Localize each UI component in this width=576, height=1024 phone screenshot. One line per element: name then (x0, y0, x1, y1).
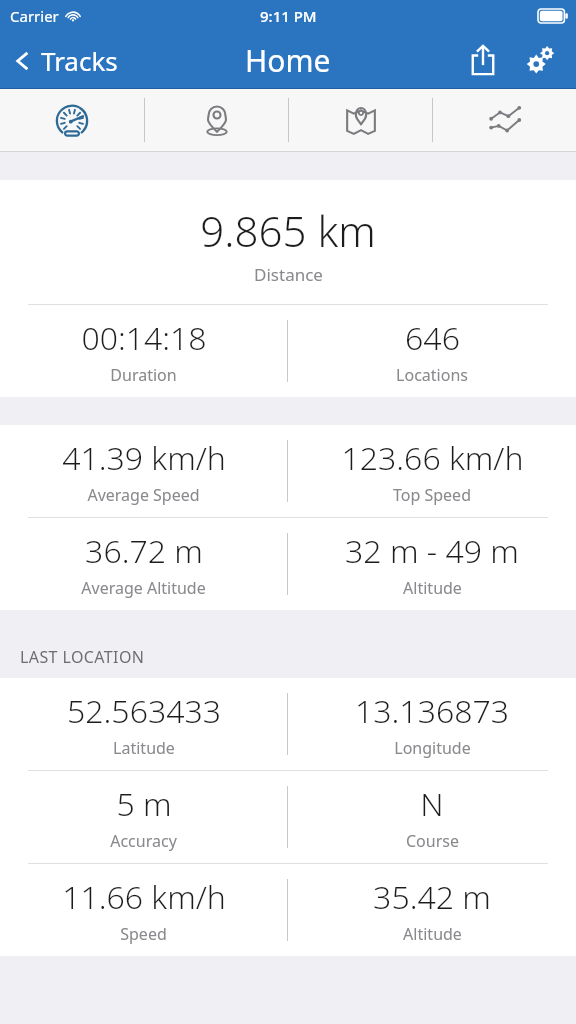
button[interactable]: Tracks (0, 37, 130, 84)
button[interactable]: 646 (288, 305, 576, 397)
staticText: Longitude (394, 737, 471, 759)
button[interactable]: 36.72 m (0, 518, 287, 610)
staticText: Average Speed (87, 484, 200, 506)
staticText: 9.865 km (200, 202, 376, 259)
staticText: 13.136873 (355, 689, 509, 733)
staticText: Locations (396, 364, 468, 386)
button[interactable]: 123.66 km/h (288, 425, 576, 517)
staticText: Tracks (41, 43, 118, 78)
staticText: Duration (110, 364, 177, 386)
staticText: Carrier (10, 6, 59, 26)
button[interactable]: Map (289, 89, 432, 151)
staticText: 35.42 m (373, 875, 491, 919)
button[interactable]: 41.39 km/h (0, 425, 287, 517)
staticText: 11.66 km/h (62, 875, 226, 919)
button[interactable]: 11.66 km/h (0, 864, 287, 956)
staticText: 41.39 km/h (62, 436, 226, 480)
staticText: LAST LOCATION (20, 646, 145, 668)
staticText: Latitude (113, 737, 175, 759)
button[interactable]: Share (454, 32, 512, 88)
button[interactable]: 32 m - 49 m (288, 518, 576, 610)
staticText: Altitude (403, 923, 462, 945)
staticText: 123.66 km/h (341, 436, 524, 480)
staticText: Altitude (403, 577, 462, 599)
staticText: Average Altitude (81, 577, 206, 599)
staticText: Accuracy (110, 830, 177, 852)
button[interactable]: 35.42 m (288, 864, 576, 956)
button[interactable]: 52.563433 (0, 678, 287, 770)
button[interactable]: N (288, 771, 576, 863)
button[interactable]: Location (145, 89, 288, 151)
staticText: 9:11 PM (260, 6, 317, 26)
button[interactable]: 00:14:18 (0, 305, 287, 397)
staticText: 5 m (116, 782, 172, 826)
staticText: 32 m - 49 m (345, 529, 519, 573)
staticText: 36.72 m (85, 529, 203, 573)
button[interactable]: Settings (512, 32, 570, 88)
staticText: Distance (254, 263, 323, 286)
button[interactable]: Dashboard (0, 89, 144, 151)
staticText: N (420, 782, 444, 826)
staticText: Home (245, 40, 331, 81)
staticText: 52.563433 (67, 689, 221, 733)
button[interactable]: 5 m (0, 771, 287, 863)
staticText: Course (406, 830, 459, 852)
staticText: Speed (120, 923, 167, 945)
staticText: 646 (405, 316, 460, 360)
button[interactable]: 9.865 km (0, 180, 576, 304)
staticText: Top Speed (393, 484, 471, 506)
button[interactable]: 13.136873 (288, 678, 576, 770)
button[interactable]: Chart (433, 89, 576, 151)
staticText: 00:14:18 (81, 316, 207, 360)
